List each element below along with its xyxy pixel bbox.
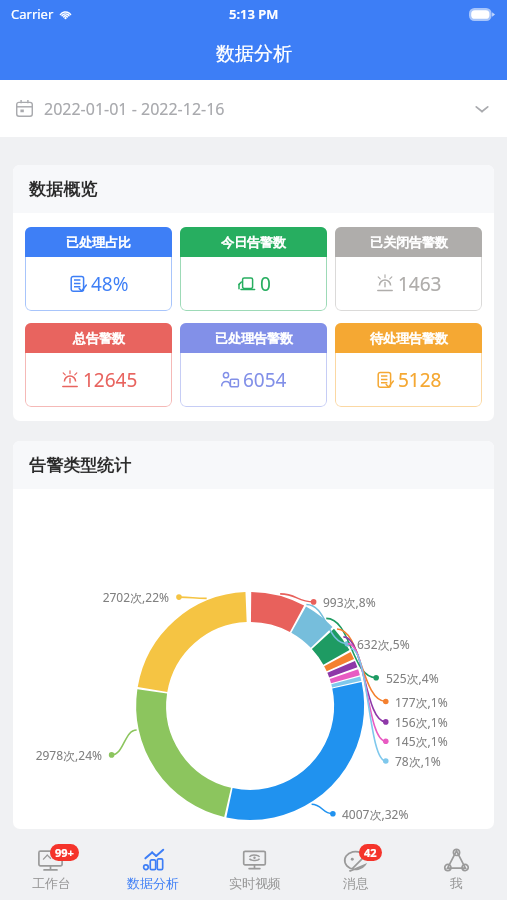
staticText: 数据分析 <box>127 875 179 891</box>
staticText: 5:13 PM <box>229 5 279 23</box>
button[interactable]: 数据分析 <box>102 838 204 900</box>
staticText: 已处理告警数 <box>215 330 293 346</box>
staticText: 156次,1% <box>395 714 448 730</box>
staticText: 已关闭告警数 <box>370 234 448 250</box>
staticText: 6054 <box>243 367 287 393</box>
button[interactable]: 总告警数 <box>25 323 172 407</box>
staticText: 5128 <box>398 367 442 393</box>
button[interactable]: 已处理占比 <box>25 227 172 311</box>
staticText: 993次,8% <box>323 594 376 610</box>
staticText: 632次,5% <box>357 636 410 652</box>
staticText: 已处理占比 <box>66 234 131 250</box>
button[interactable]: 今日告警数 <box>180 227 327 311</box>
button[interactable]: 待处理告警数 <box>335 323 482 407</box>
staticText: 12645 <box>83 367 138 393</box>
button[interactable]: 已关闭告警数 <box>335 227 482 311</box>
staticText: 525次,4% <box>386 670 439 686</box>
staticText: 145次,1% <box>395 733 448 749</box>
staticText: 48% <box>91 271 129 297</box>
staticText: 99+ <box>55 845 74 860</box>
button[interactable]: 我 <box>406 838 507 900</box>
staticText: Carrier <box>11 5 54 23</box>
staticText: 总告警数 <box>73 330 125 346</box>
staticText: 2022-01-01 - 2022-12-16 <box>44 98 225 120</box>
button[interactable]: 实时视频 <box>204 838 305 900</box>
staticText: 78次,1% <box>395 753 441 769</box>
staticText: 42 <box>364 845 377 860</box>
staticText: 我 <box>450 875 463 891</box>
button[interactable]: 消息 <box>305 838 406 900</box>
button[interactable]: 已处理告警数 <box>180 323 327 407</box>
staticText: 消息 <box>343 875 369 891</box>
staticText: 数据分析 <box>216 42 292 66</box>
staticText: 4007次,32% <box>342 806 409 822</box>
staticText: 数据概览 <box>29 179 97 200</box>
staticText: 1463 <box>398 271 442 297</box>
staticText: 实时视频 <box>229 875 281 891</box>
staticText: 待处理告警数 <box>370 330 448 346</box>
staticText: 2978次,24% <box>13 747 102 763</box>
staticText: 今日告警数 <box>221 234 286 250</box>
button[interactable]: 2022-01-01 - 2022-12-16 <box>0 80 507 137</box>
staticText: 告警类型统计 <box>29 455 131 476</box>
staticText: 0 <box>260 271 271 297</box>
staticText: 工作台 <box>32 875 71 891</box>
staticText: 2702次,22% <box>79 589 169 605</box>
staticText: 177次,1% <box>395 694 448 710</box>
button[interactable]: 工作台 <box>0 838 102 900</box>
